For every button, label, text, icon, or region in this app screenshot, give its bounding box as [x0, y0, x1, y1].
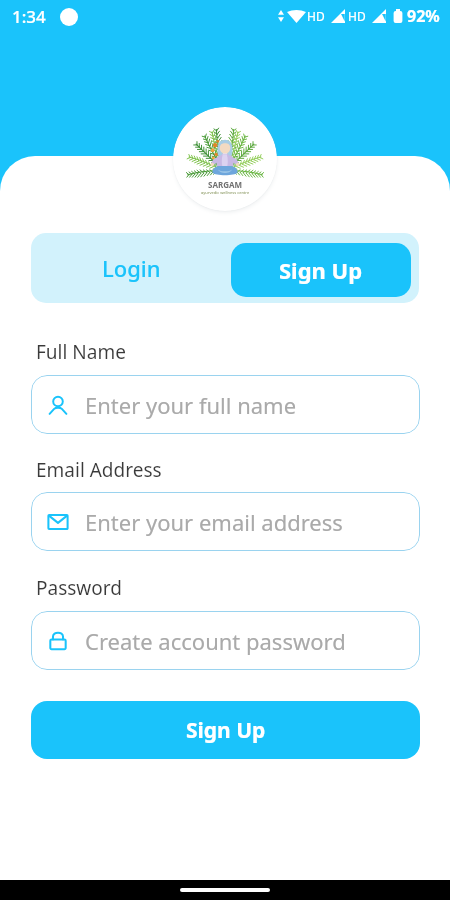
button[interactable]: Login	[36, 241, 226, 295]
button[interactable]: Sign Up	[31, 701, 420, 759]
button[interactable]: Sign Up	[231, 243, 411, 297]
staticText: 1:34	[12, 5, 46, 28]
staticText: Enter your full name	[85, 390, 297, 420]
staticText: HD	[307, 8, 325, 24]
button[interactable]: Full name	[31, 375, 420, 434]
staticText: 92%	[407, 5, 440, 27]
staticText: Enter your email address	[85, 507, 343, 537]
staticText: Sign Up	[186, 716, 266, 745]
staticText: Email Address	[36, 457, 162, 483]
staticText: SARGAM	[208, 179, 243, 190]
staticText: Password	[36, 575, 122, 601]
button[interactable]: Email address	[31, 492, 420, 551]
button[interactable]: Password	[31, 611, 420, 670]
staticText: Login	[102, 253, 161, 283]
staticText: HD	[348, 8, 366, 24]
staticText: ayurvedic wellness centre	[201, 190, 250, 195]
staticText: Create account password	[85, 626, 346, 656]
staticText: Full Name	[36, 339, 126, 365]
staticText: Sign Up	[279, 255, 363, 285]
